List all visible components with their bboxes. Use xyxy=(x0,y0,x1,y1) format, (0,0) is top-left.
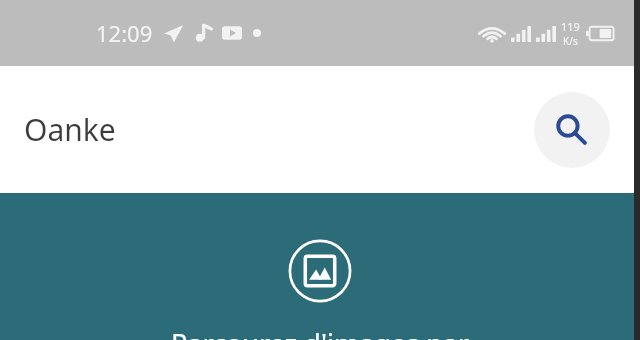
button[interactable]: Browse images xyxy=(288,239,352,303)
staticText: K/s xyxy=(563,34,578,48)
staticText: 119 xyxy=(561,19,580,34)
button[interactable]: Search xyxy=(534,92,610,168)
button[interactable]: Oanke xyxy=(0,66,640,193)
staticText: Parcourez d'images par xyxy=(0,325,640,340)
staticText: Oanke xyxy=(24,109,116,150)
staticText: 12:09 xyxy=(96,18,153,48)
